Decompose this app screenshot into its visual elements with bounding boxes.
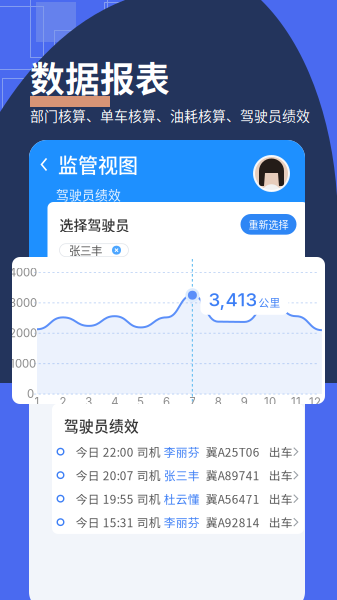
staticText: 11 <box>272 386 280 399</box>
button[interactable]: Back <box>40 157 49 172</box>
staticText: 数据报表 <box>30 52 170 102</box>
staticText: 冀A25T06 <box>200 443 260 460</box>
staticText: 6 <box>176 386 183 399</box>
staticText: 选择驾驶员 <box>59 214 129 234</box>
staticText: 今日 19:55 <box>76 490 134 507</box>
staticText: 司机 <box>134 514 164 531</box>
staticText: 0 <box>27 387 34 401</box>
staticText: 8 <box>214 386 221 399</box>
staticText: 8 <box>215 395 222 409</box>
staticText: 公里 <box>258 294 280 310</box>
staticText: 3000 <box>58 292 79 320</box>
staticText: 出车 <box>260 443 293 460</box>
staticText: 今日 15:31 <box>76 514 134 531</box>
staticText: 今日 22:00 <box>76 443 134 460</box>
button[interactable]: 重新选择 <box>240 214 296 235</box>
staticText: 驾驶员绩效 <box>56 185 121 203</box>
staticText: 2000 <box>9 326 37 340</box>
staticText: 12 月 <box>290 380 301 406</box>
staticText: 1 <box>80 386 84 399</box>
button[interactable]: 今日 20:07 <box>52 463 304 487</box>
staticText: 冀A92814 <box>200 514 260 531</box>
staticText: 3 <box>117 386 124 399</box>
staticText: 出车 <box>260 490 293 507</box>
staticText: 司机 <box>134 443 164 460</box>
button[interactable]: 今日 19:55 <box>52 487 304 510</box>
staticText: 5 <box>137 395 144 409</box>
staticText: 10 <box>251 386 262 399</box>
staticText: 2 <box>98 386 105 399</box>
button[interactable]: Remove driver <box>112 246 121 255</box>
button[interactable]: 今日 22:00 <box>52 440 304 463</box>
staticText: 杜云懂 <box>164 490 200 507</box>
staticText: 6 <box>163 395 170 409</box>
staticText: 7 <box>189 395 195 409</box>
staticText: 张三丰 <box>69 242 102 258</box>
staticText: 9 <box>241 395 248 409</box>
staticText: 2000 <box>58 316 79 343</box>
staticText: 3 <box>85 395 92 409</box>
staticText: 4000 <box>9 265 37 279</box>
staticText: 4 <box>111 395 118 409</box>
staticText: 4000 <box>58 269 79 296</box>
staticText: 冀A56471 <box>200 490 260 507</box>
staticText: 4 <box>137 386 144 399</box>
staticText: 重新选择 <box>248 217 288 232</box>
staticText: 2 <box>59 395 66 409</box>
staticText: 部门核算、单车核算、油耗核算、驾驶员绩效 <box>30 105 310 125</box>
staticText: 12 月 <box>309 395 335 409</box>
staticText: 李丽芬 <box>164 443 200 460</box>
staticText: 出车 <box>260 514 293 531</box>
button[interactable]: 今日 15:31 <box>52 510 304 534</box>
staticText: 3000 <box>9 296 37 310</box>
staticText: 9 <box>234 386 241 399</box>
staticText: 出车 <box>260 467 293 484</box>
staticText: 10 <box>264 395 276 409</box>
staticText: 张三丰 <box>164 467 200 484</box>
staticText: 1 <box>34 395 39 409</box>
staticText: 7 <box>196 386 202 399</box>
staticText: 驾驶员绩效 <box>64 415 139 436</box>
staticText: 今日 20:07 <box>76 467 134 484</box>
staticText: 司机 <box>134 490 164 507</box>
staticText: 李丽芬 <box>164 514 200 531</box>
staticText: 1000 <box>10 357 36 370</box>
staticText: 5 <box>157 386 163 399</box>
staticText: 3,413 <box>208 288 257 311</box>
staticText: 监管视图 <box>58 150 138 179</box>
staticText: 冀A89741 <box>200 467 260 484</box>
staticText: 11 <box>291 395 301 409</box>
staticText: 司机 <box>134 467 164 484</box>
